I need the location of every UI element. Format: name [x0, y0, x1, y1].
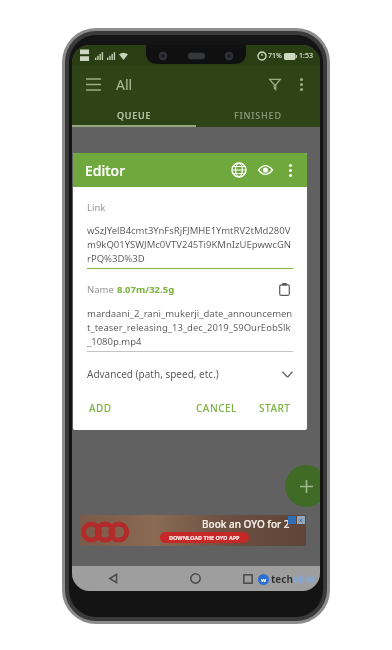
button[interactable]: Filter	[262, 71, 288, 97]
button[interactable]: QUEUE	[72, 102, 196, 127]
button[interactable]: Home	[154, 566, 237, 591]
button[interactable]: Browser	[226, 157, 252, 183]
staticText: Book an OYO for 2	[202, 517, 290, 531]
button[interactable]: More options	[288, 71, 314, 97]
staticText: 8.07m/32.5g	[117, 283, 175, 296]
staticText: FINISHED	[234, 109, 282, 121]
button[interactable]: Add download	[285, 465, 320, 507]
staticText: x	[299, 516, 303, 524]
staticText: w	[261, 576, 267, 584]
staticText: 1:53	[299, 51, 313, 61]
staticText: QUEUE	[117, 109, 152, 121]
button[interactable]: Back	[72, 566, 154, 591]
staticText: Name	[87, 283, 117, 296]
staticText: 71%	[268, 51, 282, 61]
button[interactable]: FINISHED	[196, 102, 320, 127]
button[interactable]: START	[257, 399, 293, 417]
button[interactable]: ADD	[87, 399, 114, 417]
staticText: START	[259, 401, 291, 415]
staticText: tech	[271, 572, 293, 586]
button[interactable]: CANCEL	[194, 399, 239, 417]
staticText: ADD	[89, 401, 112, 415]
staticText: All	[116, 75, 133, 94]
staticText: mardaani_2_rani_mukerji_date_announcemen…	[87, 307, 293, 348]
button[interactable]: Advertisement	[79, 515, 306, 546]
button[interactable]: More options	[278, 158, 302, 182]
staticText: Editor	[85, 161, 126, 180]
staticText: Advanced (path, speed, etc.)	[87, 367, 219, 381]
staticText: Link	[87, 201, 106, 214]
button[interactable]: Advanced (path, speed, etc.)	[87, 367, 293, 381]
staticText: viral	[293, 572, 315, 586]
staticText: wSzJYelB4cmt3YnFsRjFJMHE1YmtRV2tMd280Vm9…	[87, 224, 293, 265]
button[interactable]: Preview	[252, 157, 278, 183]
staticText: CANCEL	[196, 401, 237, 415]
staticText: DOWNLOAD THE OYO APP	[169, 534, 240, 541]
button[interactable]: Menu	[80, 71, 106, 97]
button[interactable]: Paste from clipboard	[275, 280, 293, 298]
button[interactable]: Recent apps	[237, 566, 320, 591]
